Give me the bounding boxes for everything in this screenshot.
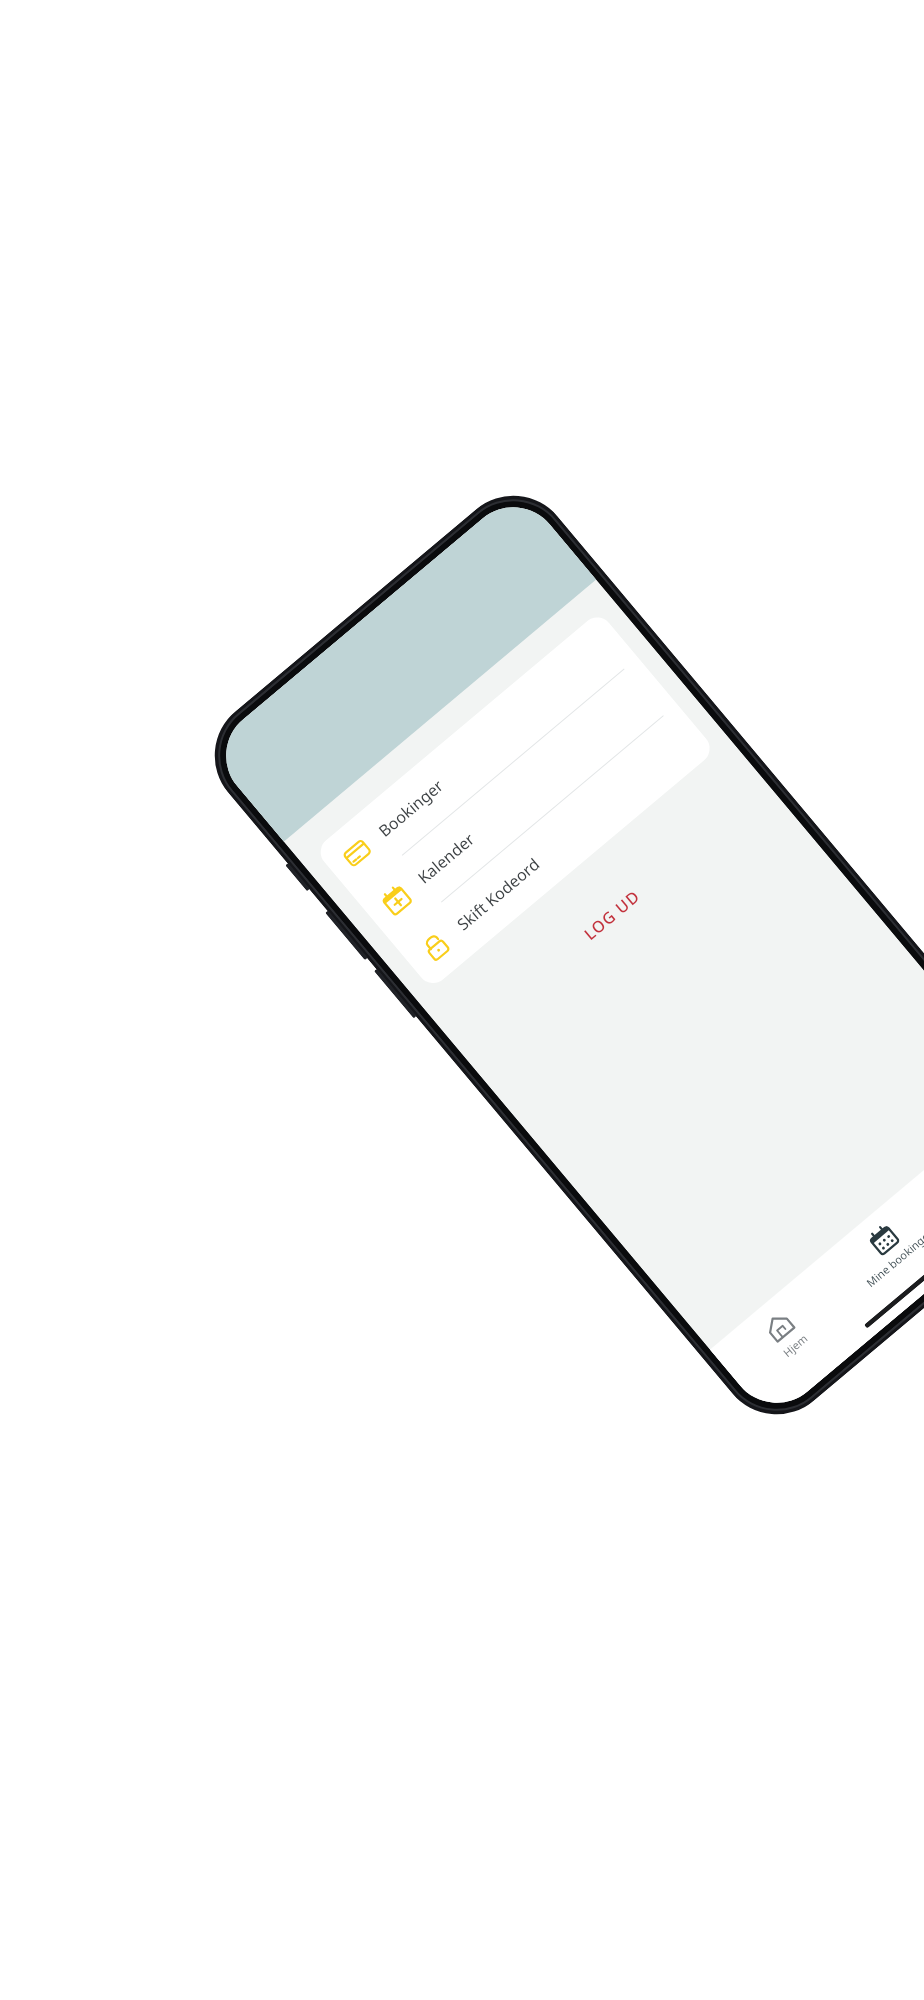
button[interactable]: Skift Kodeord	[393, 704, 716, 989]
staticText: Bookinger	[374, 775, 448, 842]
button[interactable]: Kalender	[353, 658, 677, 943]
other: Kalender	[378, 882, 415, 918]
other: Skift Kodeord	[417, 928, 454, 965]
staticText: Hjem	[779, 1331, 811, 1360]
other: Bookinger	[339, 835, 375, 871]
button[interactable]: Bookinger	[314, 611, 638, 896]
button[interactable]: LOG UD	[439, 765, 784, 1065]
staticText: LOG UD	[579, 885, 645, 945]
staticText: Skift Kodeord	[452, 853, 545, 935]
staticText: Kalender	[413, 828, 479, 888]
staticText: Mine bookinger	[863, 1226, 924, 1290]
button[interactable]: Hjem	[716, 1270, 854, 1398]
button[interactable]: Mine bookinger	[820, 1182, 924, 1310]
